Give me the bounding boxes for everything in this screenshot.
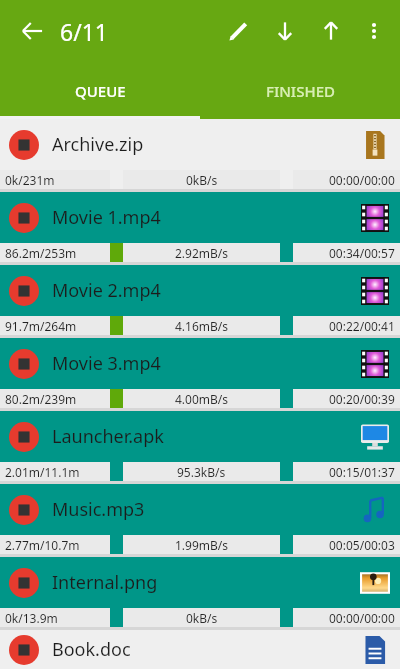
button[interactable]: Stop Internal.png [0, 557, 400, 630]
button[interactable]: Stop Movie 1.mp4 [8, 202, 40, 234]
staticText: Internal.png [52, 570, 158, 595]
staticText: 80.2m/239m [5, 391, 77, 407]
button[interactable]: Stop Internal.png [8, 567, 40, 599]
staticText: Archive.zip [52, 132, 144, 157]
staticText: 4.00mB/s [175, 391, 229, 407]
staticText: Movie 2.mp4 [52, 278, 161, 303]
button[interactable]: FINISHED [200, 62, 400, 119]
staticText: 2.77m/10.7m [5, 537, 80, 553]
button[interactable]: QUEUE [0, 62, 200, 119]
button[interactable]: Stop Music.mp3 [8, 494, 40, 526]
button[interactable]: Back [10, 9, 54, 53]
button[interactable]: Stop Movie 2.mp4 [8, 275, 40, 307]
staticText: 1.99mB/s [175, 537, 229, 553]
staticText: Launcher.apk [52, 424, 164, 449]
staticText: Music.mp3 [52, 497, 145, 522]
button[interactable]: Stop Book.doc [0, 630, 400, 669]
staticText: 00:34/00:57 [329, 245, 395, 261]
staticText: 00:00/00:00 [329, 610, 395, 626]
button[interactable]: Stop Archive.zip [8, 129, 40, 161]
staticText: 00:22/00:41 [329, 318, 395, 334]
button[interactable]: Stop Book.doc [8, 634, 40, 666]
button[interactable]: Stop Launcher.apk [8, 421, 40, 453]
staticText: 00:05/00:03 [329, 537, 395, 553]
staticText: 91.7m/264m [5, 318, 77, 334]
button[interactable]: Move down [262, 8, 308, 54]
button[interactable]: Stop Music.mp3 [0, 484, 400, 557]
staticText: 86.2m/253m [5, 245, 77, 261]
staticText: 0kB/s [186, 172, 218, 188]
staticText: 0kB/s [186, 610, 218, 626]
button[interactable]: Stop Movie 1.mp4 [0, 192, 400, 265]
staticText: Book.doc [52, 637, 131, 662]
staticText: 2.92mB/s [175, 245, 229, 261]
staticText: 00:20/00:39 [329, 391, 395, 407]
button[interactable]: Edit [216, 8, 262, 54]
staticText: 6/11 [60, 16, 109, 47]
staticText: 0k/13.9m [5, 610, 58, 626]
staticText: Movie 1.mp4 [52, 205, 161, 230]
staticText: 00:15/01:37 [329, 464, 395, 480]
button[interactable]: Stop Launcher.apk [0, 411, 400, 484]
button[interactable]: Stop Movie 2.mp4 [0, 265, 400, 338]
staticText: 4.16mB/s [175, 318, 229, 334]
staticText: 00:00/00:00 [329, 172, 395, 188]
button[interactable]: Stop Archive.zip [0, 119, 400, 192]
staticText: 2.01m/11.1m [5, 464, 80, 480]
button[interactable]: More options [354, 11, 394, 51]
staticText: Movie 3.mp4 [52, 351, 161, 376]
button[interactable]: Stop Movie 3.mp4 [0, 338, 400, 411]
staticText: QUEUE [75, 81, 126, 101]
staticText: 0k/231m [5, 172, 55, 188]
staticText: 95.3kB/s [177, 464, 226, 480]
staticText: FINISHED [266, 81, 335, 101]
button[interactable]: Stop Movie 3.mp4 [8, 348, 40, 380]
button[interactable]: Move up [308, 8, 354, 54]
